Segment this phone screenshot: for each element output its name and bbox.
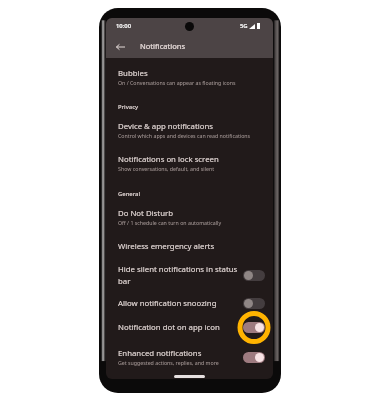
button[interactable]: Notification dot on app icon (106, 318, 273, 337)
button[interactable]: Enhanced notifications (106, 337, 273, 377)
staticText: Notifications on lock screen (118, 154, 219, 165)
staticText: Notifications (140, 41, 186, 51)
staticText: Control which apps and devices can read … (118, 132, 251, 139)
button[interactable]: Device & app notifications (106, 118, 273, 142)
staticText: Allow notification snoozing (118, 298, 217, 309)
staticText: On / Conversations can appear as floatin… (118, 79, 236, 86)
staticText: Do Not Disturb (118, 208, 174, 219)
staticText: Device & app notifications (118, 121, 214, 132)
staticText: 10:00 (116, 22, 132, 30)
button[interactable]: Do Not Disturb (106, 203, 273, 231)
staticText: Hide silent notifications in status bar (118, 264, 239, 286)
button[interactable]: Bubbles (106, 58, 273, 96)
button[interactable]: Hide silent notifications in status bar (106, 261, 273, 289)
button[interactable]: Notification dot on app icon (243, 322, 265, 333)
staticText: Get suggested actions, replies, and more (118, 359, 219, 366)
staticText: Enhanced notifications (118, 348, 202, 359)
button[interactable]: Enhanced notifications (243, 352, 265, 363)
staticText: Off / 1 schedule can turn on automatical… (118, 219, 222, 226)
staticText: Privacy (118, 103, 139, 111)
staticText: Show conversations, default, and silent (118, 165, 215, 172)
button[interactable]: Hide silent notifications in status bar (243, 270, 265, 281)
staticText: Bubbles (118, 68, 148, 79)
staticText: Notification dot on app icon (118, 322, 220, 333)
button[interactable]: Back (113, 39, 128, 54)
staticText: Wireless emergency alerts (118, 241, 215, 252)
button[interactable]: Allow notification snoozing (106, 289, 273, 318)
staticText: General (118, 190, 141, 198)
staticText: 5G (240, 22, 248, 30)
button[interactable]: Wireless emergency alerts (106, 231, 273, 261)
button[interactable]: Allow notification snoozing (243, 298, 265, 309)
button[interactable]: Notifications on lock screen (106, 142, 273, 184)
